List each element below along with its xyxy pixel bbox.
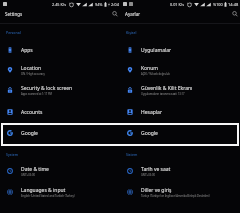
button[interactable]: Konum: [120, 60, 240, 80]
staticText: 2:04: [111, 2, 119, 7]
staticText: Settings: [5, 11, 23, 17]
button[interactable]: Apps: [0, 40, 120, 60]
staticText: Apps: [21, 47, 33, 54]
staticText: ON / High accuracy: [21, 72, 45, 76]
staticText: Hesaplar: [141, 109, 162, 116]
staticText: 94%: [95, 2, 103, 7]
staticText: %100: [213, 2, 223, 7]
staticText: Languages & input: [21, 187, 66, 194]
staticText: Sistem: [126, 152, 138, 157]
staticText: Tarih ve saat: [141, 166, 171, 173]
button[interactable]: Tarih ve saat: [120, 161, 240, 181]
button[interactable]: Accounts: [0, 102, 120, 122]
staticText: English (United States) and Turkish (Tur…: [21, 194, 75, 198]
staticText: System: [6, 152, 19, 157]
staticText: Diller ve giriş: [141, 187, 172, 194]
staticText: Kişisel: [126, 30, 137, 35]
button[interactable]: Diller ve giriş: [120, 182, 240, 202]
staticText: Ayarlar: [125, 11, 141, 17]
button[interactable]: Search: [110, 9, 119, 18]
staticText: AÇIK / Yüksek doğruluk: [141, 72, 170, 76]
staticText: Google: [141, 130, 158, 137]
staticText: Uygulamaların taranma saati 13:17: [141, 92, 185, 96]
button[interactable]: Güvenlik & Kilit Ekranı: [120, 80, 240, 100]
staticText: Apps scanned at 1:17 PM: [21, 92, 53, 96]
staticText: 14:48: [228, 2, 239, 7]
staticText: Security & lock screen: [21, 85, 73, 92]
button[interactable]: Google: [120, 123, 240, 143]
staticText: GMT+03:00: [21, 173, 36, 177]
button[interactable]: Security & lock screen: [0, 80, 120, 100]
staticText: Accounts: [21, 109, 43, 116]
button[interactable]: Uygulamalar: [120, 40, 240, 60]
button[interactable]: Location: [0, 60, 120, 80]
staticText: Uygulamalar: [141, 47, 172, 54]
button[interactable]: Google: [0, 123, 120, 143]
staticText: 0.01 K/s: [170, 2, 185, 7]
staticText: GMT+03:00: [141, 173, 156, 177]
staticText: Konum: [141, 65, 158, 72]
staticText: Personal: [6, 30, 21, 35]
staticText: Google: [21, 130, 38, 137]
staticText: Türkçe (Türkiye) ve İngilizce (Amerika B…: [141, 194, 210, 198]
button[interactable]: Hesaplar: [120, 102, 240, 122]
staticText: 2.45 K/s: [52, 2, 67, 7]
staticText: Location: [21, 65, 42, 72]
staticText: Güvenlik & Kilit Ekranı: [141, 85, 193, 92]
button[interactable]: Languages & input: [0, 182, 120, 202]
button[interactable]: Date & time: [0, 161, 120, 181]
staticText: Date & time: [21, 166, 49, 173]
button[interactable]: Search: [230, 9, 239, 18]
